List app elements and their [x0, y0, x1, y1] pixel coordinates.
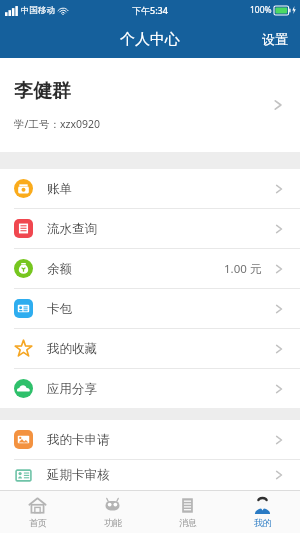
staticText: 卡包	[47, 301, 72, 317]
button[interactable]: 消息	[150, 491, 225, 533]
staticText: 我的卡申请	[47, 432, 110, 448]
button[interactable]: 我的	[225, 491, 300, 533]
staticText: 流水查询	[47, 221, 97, 237]
staticText: 功能	[104, 517, 122, 528]
button[interactable]: 账单	[0, 169, 300, 208]
button[interactable]: 功能	[75, 491, 150, 533]
button[interactable]: 应用分享	[0, 369, 300, 408]
button[interactable]: 余额	[0, 249, 300, 288]
button[interactable]: 延期卡审核	[0, 460, 300, 490]
button[interactable]: 我的卡申请	[0, 420, 300, 459]
staticText: 下午5:34	[132, 4, 168, 16]
staticText: 我的	[254, 517, 272, 528]
staticText: 李健群	[14, 79, 71, 103]
staticText: 应用分享	[47, 381, 97, 397]
staticText: 账单	[47, 181, 72, 197]
staticText: 设置	[262, 31, 288, 47]
staticText: 中国移动	[21, 5, 55, 16]
staticText: 1.00 元	[224, 261, 262, 277]
button[interactable]: 首页	[0, 491, 75, 533]
staticText: 我的收藏	[47, 341, 97, 357]
staticText: 学/工号：xzx0920	[14, 117, 100, 131]
button[interactable]: 设置	[250, 20, 300, 58]
button[interactable]: 卡包	[0, 289, 300, 328]
button[interactable]: 我的收藏	[0, 329, 300, 368]
staticText: 余额	[47, 261, 72, 277]
button[interactable]: 流水查询	[0, 209, 300, 248]
staticText: 延期卡审核	[47, 467, 110, 483]
staticText: 首页	[29, 517, 47, 528]
staticText: 消息	[179, 517, 197, 528]
staticText: 个人中心	[120, 30, 180, 49]
staticText: 100%	[250, 4, 272, 16]
button[interactable]: 李健群	[0, 58, 300, 152]
